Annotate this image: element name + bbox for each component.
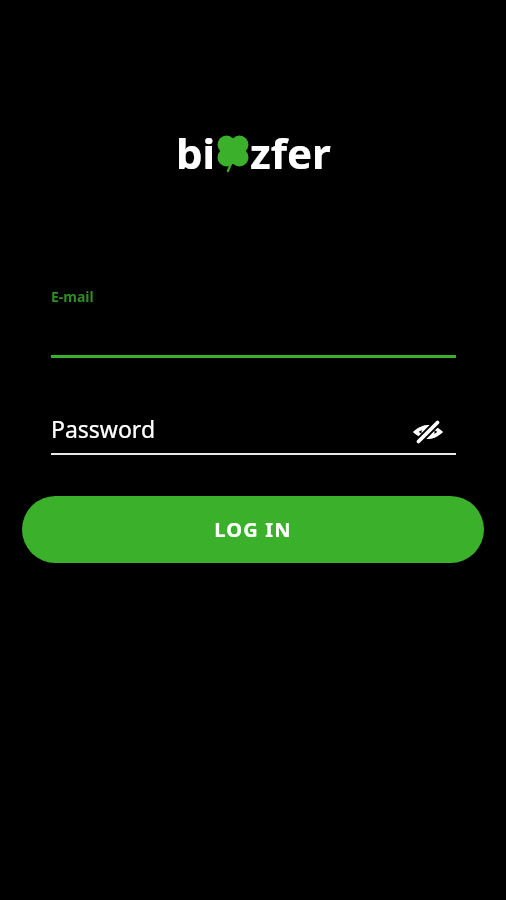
button[interactable]: LOG IN [22, 496, 484, 563]
staticText: bi [176, 124, 216, 181]
staticText: E-mail [51, 287, 94, 306]
button[interactable]: Show password [404, 408, 452, 456]
button[interactable]: E-mail [22, 272, 484, 362]
staticText: Password [51, 413, 156, 444]
staticText: LOG IN [214, 516, 292, 543]
staticText: zfer [250, 124, 331, 181]
button[interactable]: Password [22, 400, 484, 457]
